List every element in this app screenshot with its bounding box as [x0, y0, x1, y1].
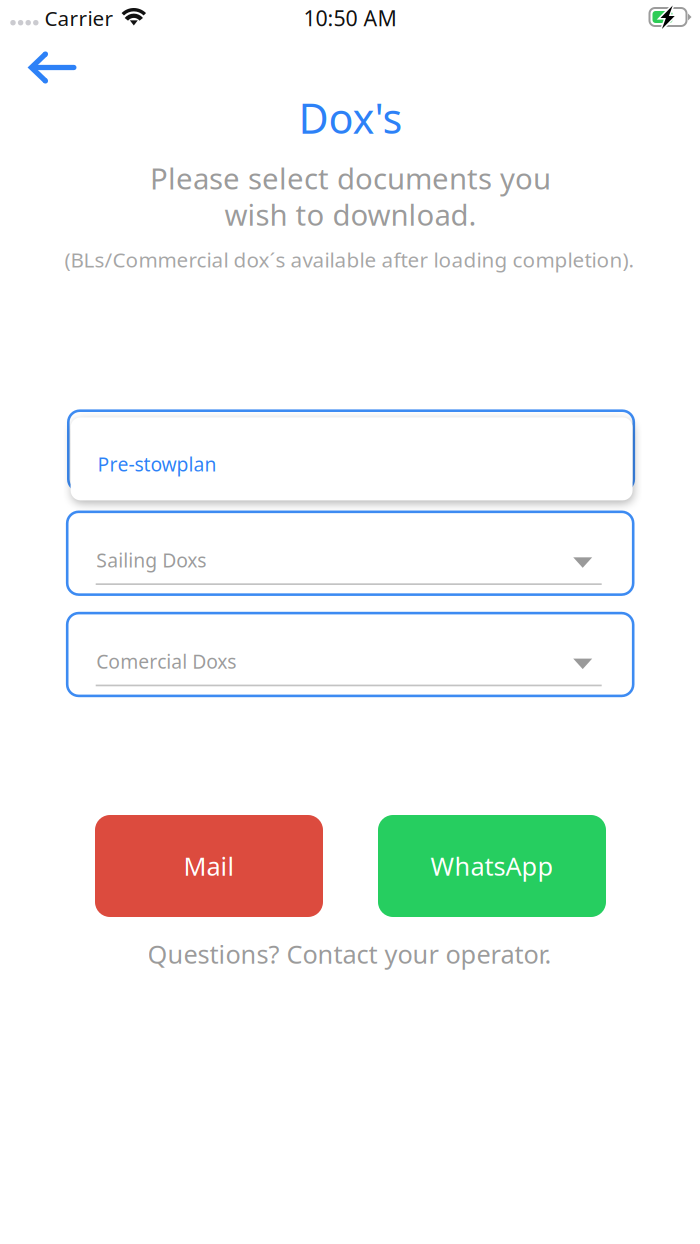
button[interactable]: Mail — [95, 815, 323, 917]
button[interactable]: WhatsApp — [378, 815, 606, 917]
button[interactable]: Back — [2, 30, 102, 104]
button[interactable]: Comercial Doxs — [67, 613, 633, 696]
staticText: Pre-stowplan — [98, 451, 217, 477]
staticText: Carrier — [44, 4, 113, 32]
staticText: Mail — [183, 849, 234, 883]
staticText: (BLs/Commercial dox´s available after lo… — [64, 245, 634, 273]
button[interactable]: Pre-stowplan — [68, 411, 636, 503]
staticText: Please select documents you — [150, 158, 551, 198]
staticText: wish to download. — [224, 194, 476, 234]
staticText: Sailing Doxs — [96, 547, 206, 573]
staticText: WhatsApp — [430, 849, 553, 883]
staticText: 10:50 AM — [303, 3, 396, 33]
staticText: Dox's — [298, 89, 402, 146]
staticText: Questions? Contact your operator. — [147, 937, 551, 971]
staticText: Comercial Doxs — [96, 648, 236, 674]
button[interactable]: Sailing Doxs — [67, 512, 633, 595]
